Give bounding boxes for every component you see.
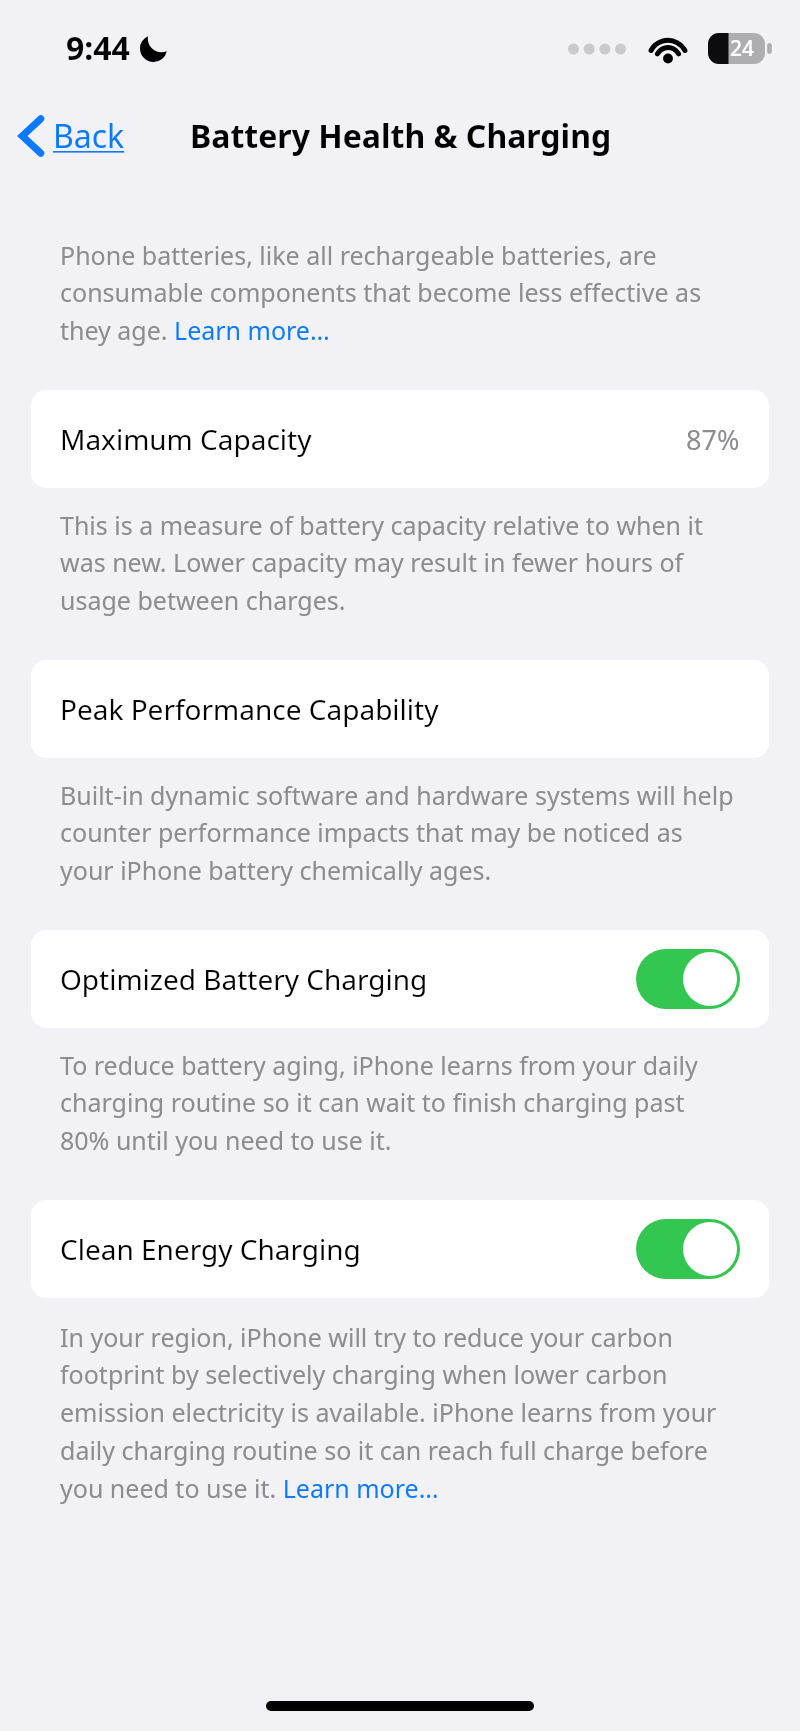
staticText: 9:44 <box>66 26 130 70</box>
staticText: 24 <box>730 34 755 63</box>
staticText: Optimized Battery Charging <box>60 960 428 998</box>
button[interactable]: Clean Energy Charging <box>31 1200 769 1298</box>
button[interactable]: Back <box>14 106 131 166</box>
other: Back <box>20 116 43 156</box>
other: Battery 24 percent <box>708 33 772 64</box>
staticText: Phone batteries, like all rechargeable b… <box>60 238 740 348</box>
button[interactable]: Optimized Battery Charging <box>636 949 740 1009</box>
button[interactable]: Optimized Battery Charging <box>31 930 769 1028</box>
staticText: Maximum Capacity <box>60 420 312 458</box>
staticText: To reduce battery aging, iPhone learns f… <box>60 1048 740 1158</box>
staticText: Built-in dynamic software and hardware s… <box>60 778 740 888</box>
button[interactable]: Peak Performance Capability <box>31 660 769 758</box>
button[interactable]: Clean Energy Charging <box>636 1219 740 1279</box>
button[interactable]: Maximum Capacity <box>31 390 769 488</box>
staticText: Clean Energy Charging <box>60 1230 361 1268</box>
staticText: Back <box>53 114 125 158</box>
staticText: 87% <box>686 421 740 458</box>
staticText: This is a measure of battery capacity re… <box>60 508 740 618</box>
staticText: Peak Performance Capability <box>60 690 439 728</box>
staticText: Battery Health & Charging <box>190 114 612 158</box>
staticText: In your region, iPhone will try to reduc… <box>60 1320 740 1506</box>
